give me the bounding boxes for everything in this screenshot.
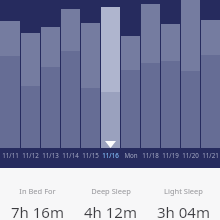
button[interactable]: 11/16	[101, 151, 120, 159]
staticText: 7h 16m	[11, 202, 64, 220]
staticText: Deep Sleep	[91, 186, 131, 196]
staticText: 11/13	[42, 151, 59, 159]
staticText: In Bed For	[19, 186, 56, 196]
button[interactable]: Light Sleep	[147, 186, 220, 220]
staticText: 11/15	[82, 151, 99, 159]
staticText: 3h 04m	[157, 202, 210, 220]
staticText: Mon	[124, 151, 138, 159]
staticText: 11/21	[202, 151, 219, 159]
staticText: 11/16	[102, 151, 119, 159]
button[interactable]: Sleep on Mon	[121, 0, 140, 148]
staticText: 4h 12m	[84, 202, 137, 220]
button[interactable]: 11/21	[201, 151, 220, 159]
button[interactable]: Sleep on 11/19	[161, 0, 180, 148]
staticText: 11/20	[182, 151, 199, 159]
button[interactable]: Sleep on 11/16	[101, 0, 120, 148]
button[interactable]: Sleep on 11/15	[81, 0, 100, 148]
button[interactable]: Sleep on 11/13	[41, 0, 60, 148]
staticText: 11/11	[2, 151, 19, 159]
button[interactable]: 11/18	[141, 151, 160, 159]
staticText: 11/19	[162, 151, 179, 159]
button[interactable]: Sleep on 11/14	[61, 0, 80, 148]
button[interactable]: 11/19	[161, 151, 180, 159]
button[interactable]: 11/11	[0, 151, 20, 159]
button[interactable]: Sleep on 11/21	[201, 0, 220, 148]
staticText: Light Sleep	[164, 186, 203, 196]
staticText: 11/12	[22, 151, 39, 159]
button[interactable]: Sleep on 11/18	[141, 0, 160, 148]
staticText: 11/14	[62, 151, 79, 159]
staticText: 11/18	[142, 151, 159, 159]
button[interactable]: 11/15	[81, 151, 100, 159]
button[interactable]: Sleep on 11/20	[181, 0, 200, 148]
button[interactable]: Deep Sleep	[74, 186, 147, 220]
button[interactable]: 11/13	[41, 151, 60, 159]
button[interactable]: Mon	[121, 151, 140, 159]
button[interactable]: Sleep on 11/12	[21, 0, 40, 148]
button[interactable]: 11/12	[21, 151, 40, 159]
button[interactable]: 11/14	[61, 151, 80, 159]
button[interactable]: In Bed For	[0, 186, 74, 220]
button[interactable]: Sleep on 11/11	[0, 0, 20, 148]
button[interactable]: 11/20	[181, 151, 200, 159]
